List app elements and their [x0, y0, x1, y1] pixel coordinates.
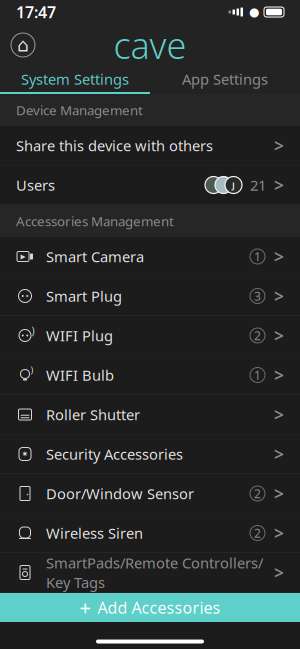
staticText: Smart Camera: [46, 247, 144, 266]
staticText: >: [274, 173, 284, 196]
button[interactable]: ): [0, 355, 300, 395]
button[interactable]: Users: [0, 165, 300, 205]
staticText: 2: [254, 485, 261, 501]
staticText: Device Management: [16, 101, 143, 119]
staticText: Door/Window Sensor: [46, 484, 194, 503]
staticText: Users: [16, 175, 55, 195]
staticText: 2: [254, 327, 261, 343]
staticText: WIFI Bulb: [46, 365, 114, 385]
button[interactable]: ✷: [0, 434, 300, 474]
staticText: Roller Shutter: [46, 405, 140, 424]
button[interactable]: Wireless Siren: [0, 513, 300, 553]
staticText: ): [31, 323, 34, 338]
staticText: >: [274, 561, 284, 584]
button[interactable]: Door/Window Sensor: [0, 474, 300, 513]
staticText: 21: [250, 175, 266, 195]
staticText: 1: [254, 367, 261, 383]
staticText: Share this device with others: [16, 136, 213, 155]
staticText: >: [274, 521, 284, 544]
staticText: Smart Plug: [46, 286, 122, 306]
staticText: >: [274, 363, 284, 386]
staticText: Accessories Management: [16, 212, 174, 230]
staticText: >: [274, 482, 284, 505]
staticText: Security Accessories: [46, 444, 183, 464]
button[interactable]: Home: [6, 28, 40, 62]
staticText: WIFI Plug: [46, 326, 113, 345]
staticText: SmartPads/Remote Controllers/Key Tags: [46, 553, 263, 592]
button[interactable]: App Settings: [150, 66, 300, 92]
staticText: Wireless Siren: [46, 523, 143, 543]
button[interactable]: System Settings: [0, 66, 150, 92]
button[interactable]: SmartPads/Remote Controllers/Key Tags: [0, 553, 300, 592]
button[interactable]: Smart Plug: [0, 276, 300, 316]
staticText: ▶: [20, 253, 25, 260]
staticText: 17:47: [16, 1, 56, 23]
staticText: >: [274, 284, 284, 307]
button[interactable]: +: [0, 593, 300, 622]
staticText: ): [30, 364, 33, 376]
button[interactable]: ▶: [0, 237, 300, 276]
staticText: Add Accessories: [97, 597, 220, 618]
staticText: J: [232, 179, 235, 191]
staticText: System Settings: [21, 69, 129, 89]
staticText: >: [274, 324, 284, 347]
staticText: App Settings: [182, 69, 268, 89]
button[interactable]: Share this device with others: [0, 126, 300, 165]
staticText: 2: [254, 525, 261, 541]
staticText: >: [274, 134, 284, 157]
staticText: 3: [254, 288, 261, 304]
staticText: >: [274, 245, 284, 268]
staticText: ✷: [21, 449, 28, 459]
staticText: >: [274, 442, 284, 465]
staticText: ●: [249, 5, 259, 19]
staticText: >: [274, 403, 284, 426]
staticText: 1: [254, 248, 261, 264]
staticText: ⌂: [17, 34, 29, 56]
staticText: +: [79, 594, 90, 621]
staticText: cave: [113, 21, 186, 69]
button[interactable]: Roller Shutter: [0, 395, 300, 434]
button[interactable]: ): [0, 316, 300, 355]
